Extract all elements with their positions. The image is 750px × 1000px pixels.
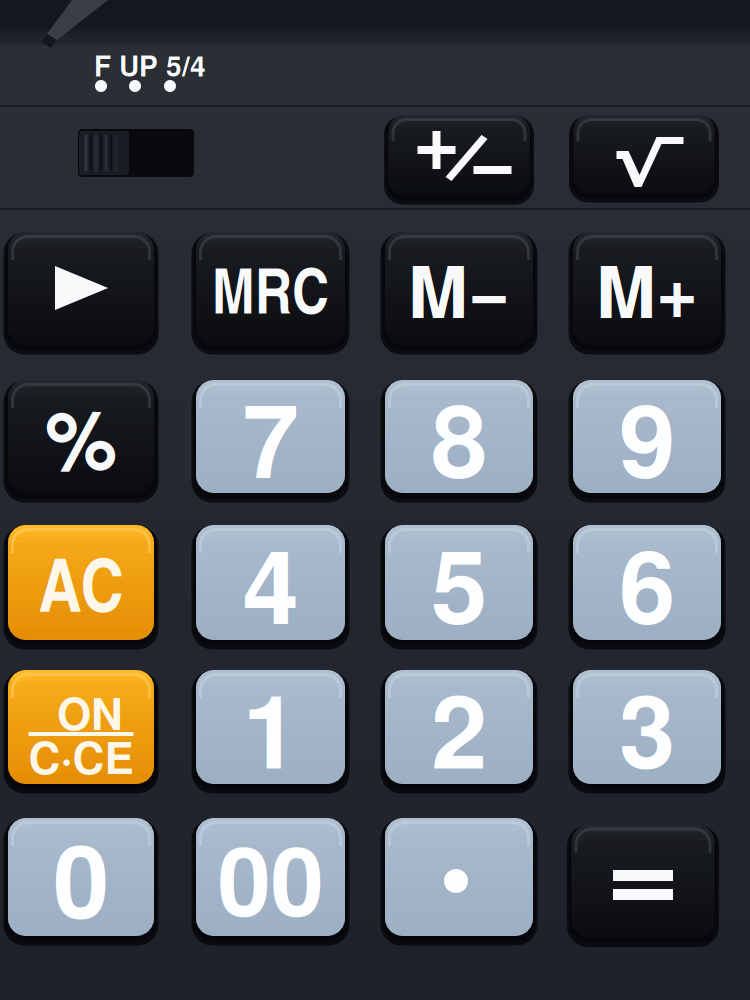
button[interactable]: 9 [573,380,721,493]
button[interactable]: 6 [573,525,721,640]
button[interactable]: 2 [385,670,533,784]
staticText: C·CE [28,724,133,787]
staticText: ON [57,680,123,743]
button[interactable]: Play [8,232,154,345]
staticText: F UP 5/4 [94,45,206,85]
button[interactable]: MRC [196,232,345,345]
staticText: 2 [431,654,487,799]
staticText: 7 [242,364,298,509]
button[interactable]: Equals [571,824,714,937]
button[interactable]: 3 [573,670,721,784]
button[interactable]: Decimal point [385,818,533,936]
button[interactable]: Square root [573,115,714,193]
button[interactable]: AC [8,525,154,640]
staticText: 9 [619,364,675,509]
staticText: 0 [53,804,109,949]
staticText: 1 [242,654,298,799]
button[interactable]: 1 [196,670,345,784]
staticText: 5 [431,510,487,655]
button[interactable]: 8 [385,380,533,493]
button[interactable]: % [8,380,154,493]
button[interactable]: 4 [196,525,345,640]
button[interactable]: Sign change [388,115,529,195]
button[interactable]: 7 [196,380,345,493]
staticText: M− [408,237,510,340]
staticText: 3 [619,654,675,799]
button[interactable]: 0 [8,818,154,936]
button[interactable]: M− [385,232,533,345]
staticText: 6 [619,510,675,655]
staticText: 8 [431,364,487,509]
button[interactable]: 00 [196,818,345,936]
staticText: MRC [212,244,329,333]
staticText: M+ [596,237,698,340]
staticText: 4 [242,510,298,655]
button[interactable]: M+ [573,232,721,345]
staticText: 00 [217,808,323,946]
button[interactable]: 5 [385,525,533,640]
button[interactable]: On, clear entry [8,670,154,784]
staticText: % [45,378,117,495]
staticText: AC [38,531,123,634]
